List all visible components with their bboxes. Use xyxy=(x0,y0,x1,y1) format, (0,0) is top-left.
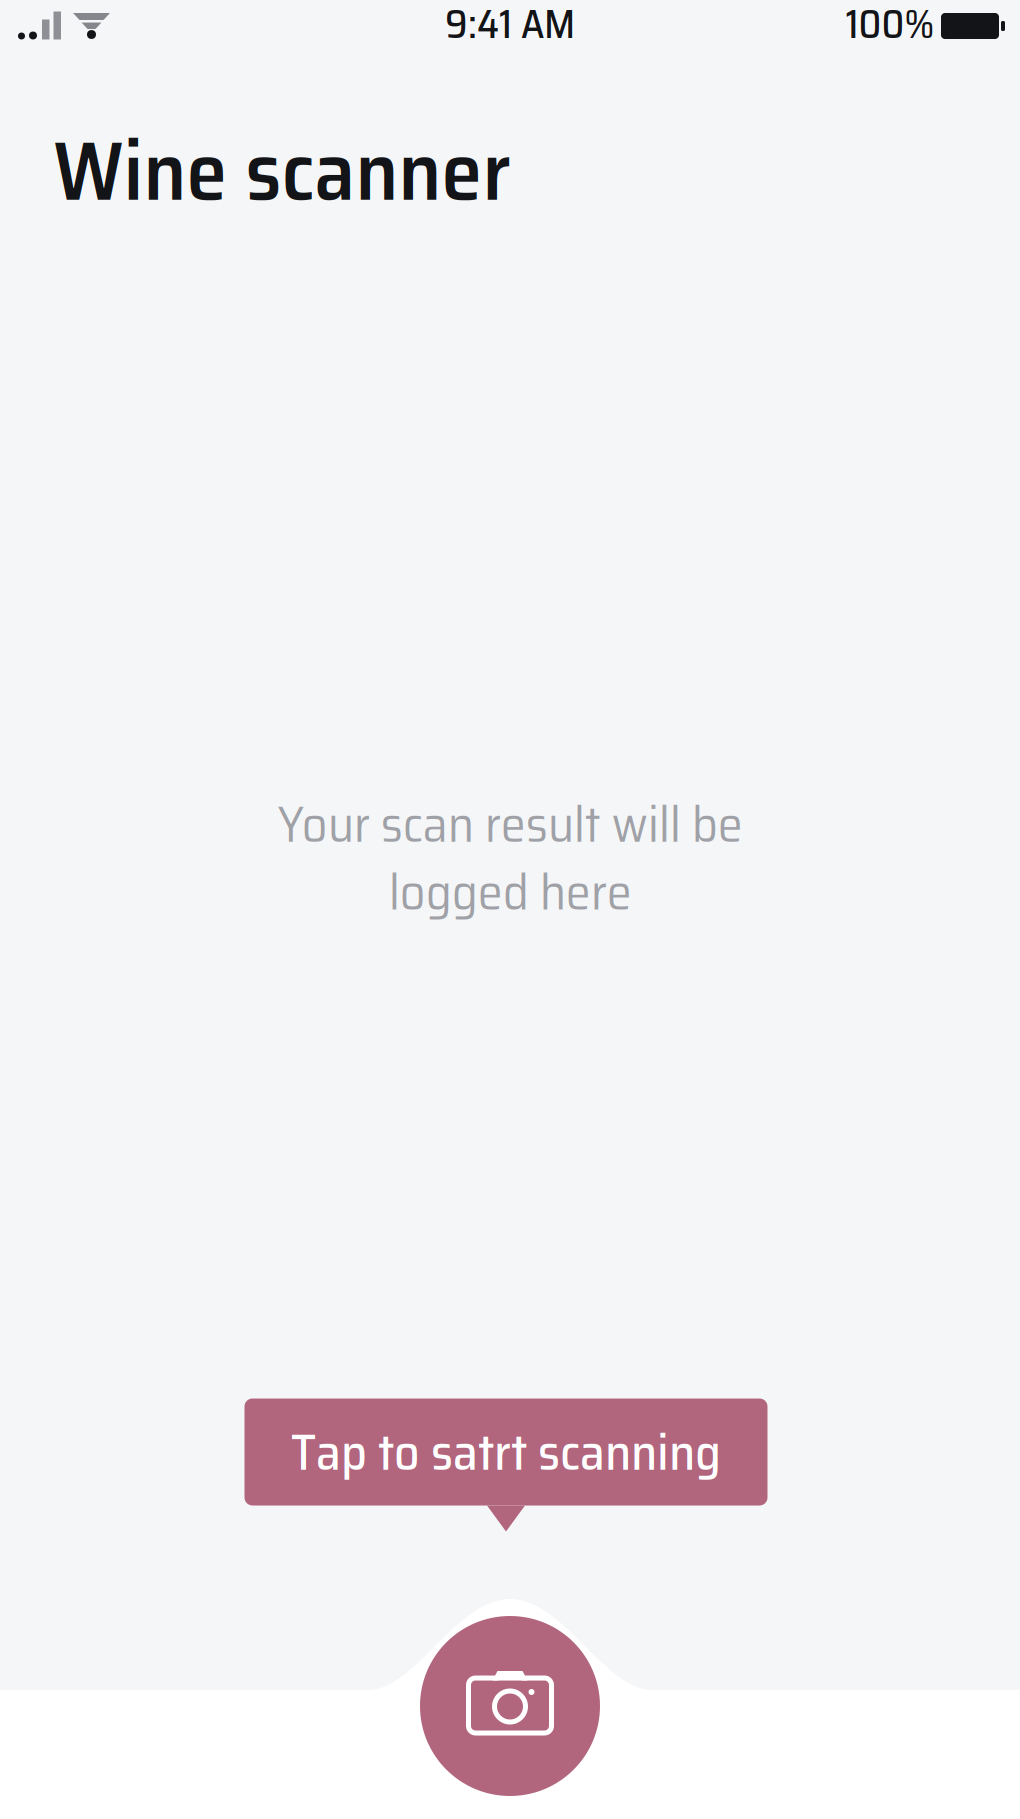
staticText: Your scan result will be xyxy=(277,784,742,864)
staticText: Wine scanner xyxy=(53,106,510,236)
button[interactable]: Scan wine label xyxy=(420,1616,600,1796)
staticText: logged here xyxy=(388,852,631,932)
staticText: 100% xyxy=(845,0,934,55)
staticText: Tap to satrt scanning xyxy=(291,1412,721,1492)
button[interactable]: Tap to satrt scanning xyxy=(244,1398,767,1531)
staticText: 9:41 AM xyxy=(445,0,575,55)
